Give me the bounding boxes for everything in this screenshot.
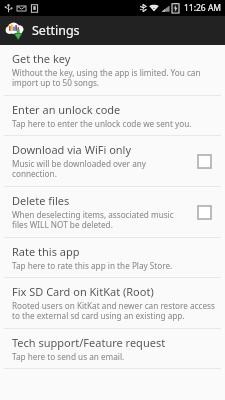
staticText: Tap here to rate this app in the Play St… [12,260,173,271]
staticText: Delete files [12,193,70,208]
staticText: When deselecting items, associated music… [12,209,185,231]
staticText: Fix SD Card on KitKat (Root) [12,284,154,299]
staticText: Rooted users on KitKat and newer can res… [12,300,217,322]
button[interactable]: Fix SD Card on KitKat (Root) [0,278,225,328]
staticText: Tap here to send us an email. [12,351,125,362]
button[interactable]: Delete files [191,199,217,225]
staticText: Tech support/Feature request [12,335,166,350]
button[interactable]: Delete files [0,187,225,237]
staticText: Settings [32,22,80,39]
staticText: Music will be downloaded over any connec… [12,158,185,180]
staticText: Get the key [12,51,71,66]
staticText: Without the key, using the app is limite… [12,67,217,89]
button[interactable]: Tech support/Feature request [0,329,225,368]
button[interactable]: Download via WiFi only [191,148,217,174]
button[interactable]: Get the key [0,45,225,95]
staticText: 11:26 AM [184,2,222,14]
button[interactable]: Download via WiFi only [0,136,225,186]
staticText: Tap here to enter the unlock code we sen… [12,118,192,129]
staticText: Rate this app [12,244,80,259]
staticText: Enter an unlock code [12,102,121,117]
button[interactable]: Rate this app [0,238,225,277]
staticText: Download via WiFi only [12,142,132,157]
button[interactable]: Enter an unlock code [0,96,225,135]
